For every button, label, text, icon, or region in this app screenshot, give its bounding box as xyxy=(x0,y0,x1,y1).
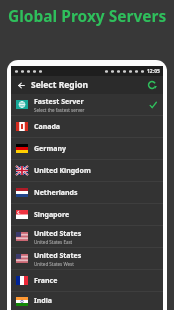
staticText: France xyxy=(34,276,58,286)
staticText: Netherlands xyxy=(34,188,78,198)
button[interactable]: Netherlands xyxy=(11,182,163,204)
button[interactable]: Fastest Server xyxy=(11,94,163,116)
button[interactable]: Canada xyxy=(11,116,163,138)
button[interactable]: Singapore xyxy=(11,204,163,226)
staticText: Singapore xyxy=(34,210,70,220)
staticText: United States West xyxy=(34,261,74,267)
button[interactable]: India xyxy=(11,292,163,310)
staticText: Canada xyxy=(34,122,61,132)
button[interactable]: Back xyxy=(11,76,31,94)
staticText: 12:05 xyxy=(147,68,160,75)
button[interactable]: United Kingdom xyxy=(11,160,163,182)
staticText: United States East xyxy=(34,239,73,245)
staticText: Fastest Server xyxy=(34,97,84,107)
button[interactable]: United States xyxy=(11,226,163,248)
button[interactable]: France xyxy=(11,270,163,292)
staticText: Global Proxy Servers xyxy=(8,5,167,26)
button[interactable]: United States xyxy=(11,248,163,270)
staticText: India xyxy=(34,296,52,306)
staticText: Select the fastest server xyxy=(34,107,85,113)
staticText: United States xyxy=(34,229,82,239)
staticText: Select Region xyxy=(31,79,89,91)
staticText: United Kingdom xyxy=(34,166,91,176)
button[interactable]: Refresh xyxy=(141,76,163,94)
staticText: United States xyxy=(34,251,82,261)
staticText: Germany xyxy=(34,144,66,154)
button[interactable]: Germany xyxy=(11,138,163,160)
